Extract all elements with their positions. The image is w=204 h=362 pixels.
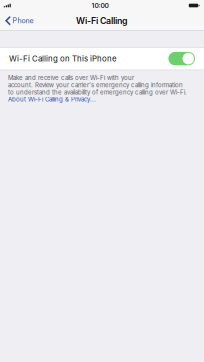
staticText: to understand the availability of emerge…	[8, 88, 187, 96]
staticText: Phone	[12, 16, 33, 25]
button[interactable]: About Wi-Fi Calling & Privacy...	[8, 96, 96, 103]
staticText: Wi-Fi Calling	[76, 15, 128, 26]
staticText: Make and receive calls over Wi-Fi with y…	[8, 74, 134, 81]
button[interactable]: Phone	[0, 11, 37, 30]
staticText: account. Review your carrier's emergency…	[8, 81, 183, 89]
staticText: About Wi-Fi Calling & Privacy...	[8, 96, 96, 103]
staticText: 10:00	[91, 1, 108, 10]
staticText: Wi-Fi Calling on This iPhone	[9, 54, 117, 63]
button[interactable]: Wi-Fi Calling on This iPhone	[0, 47, 204, 70]
